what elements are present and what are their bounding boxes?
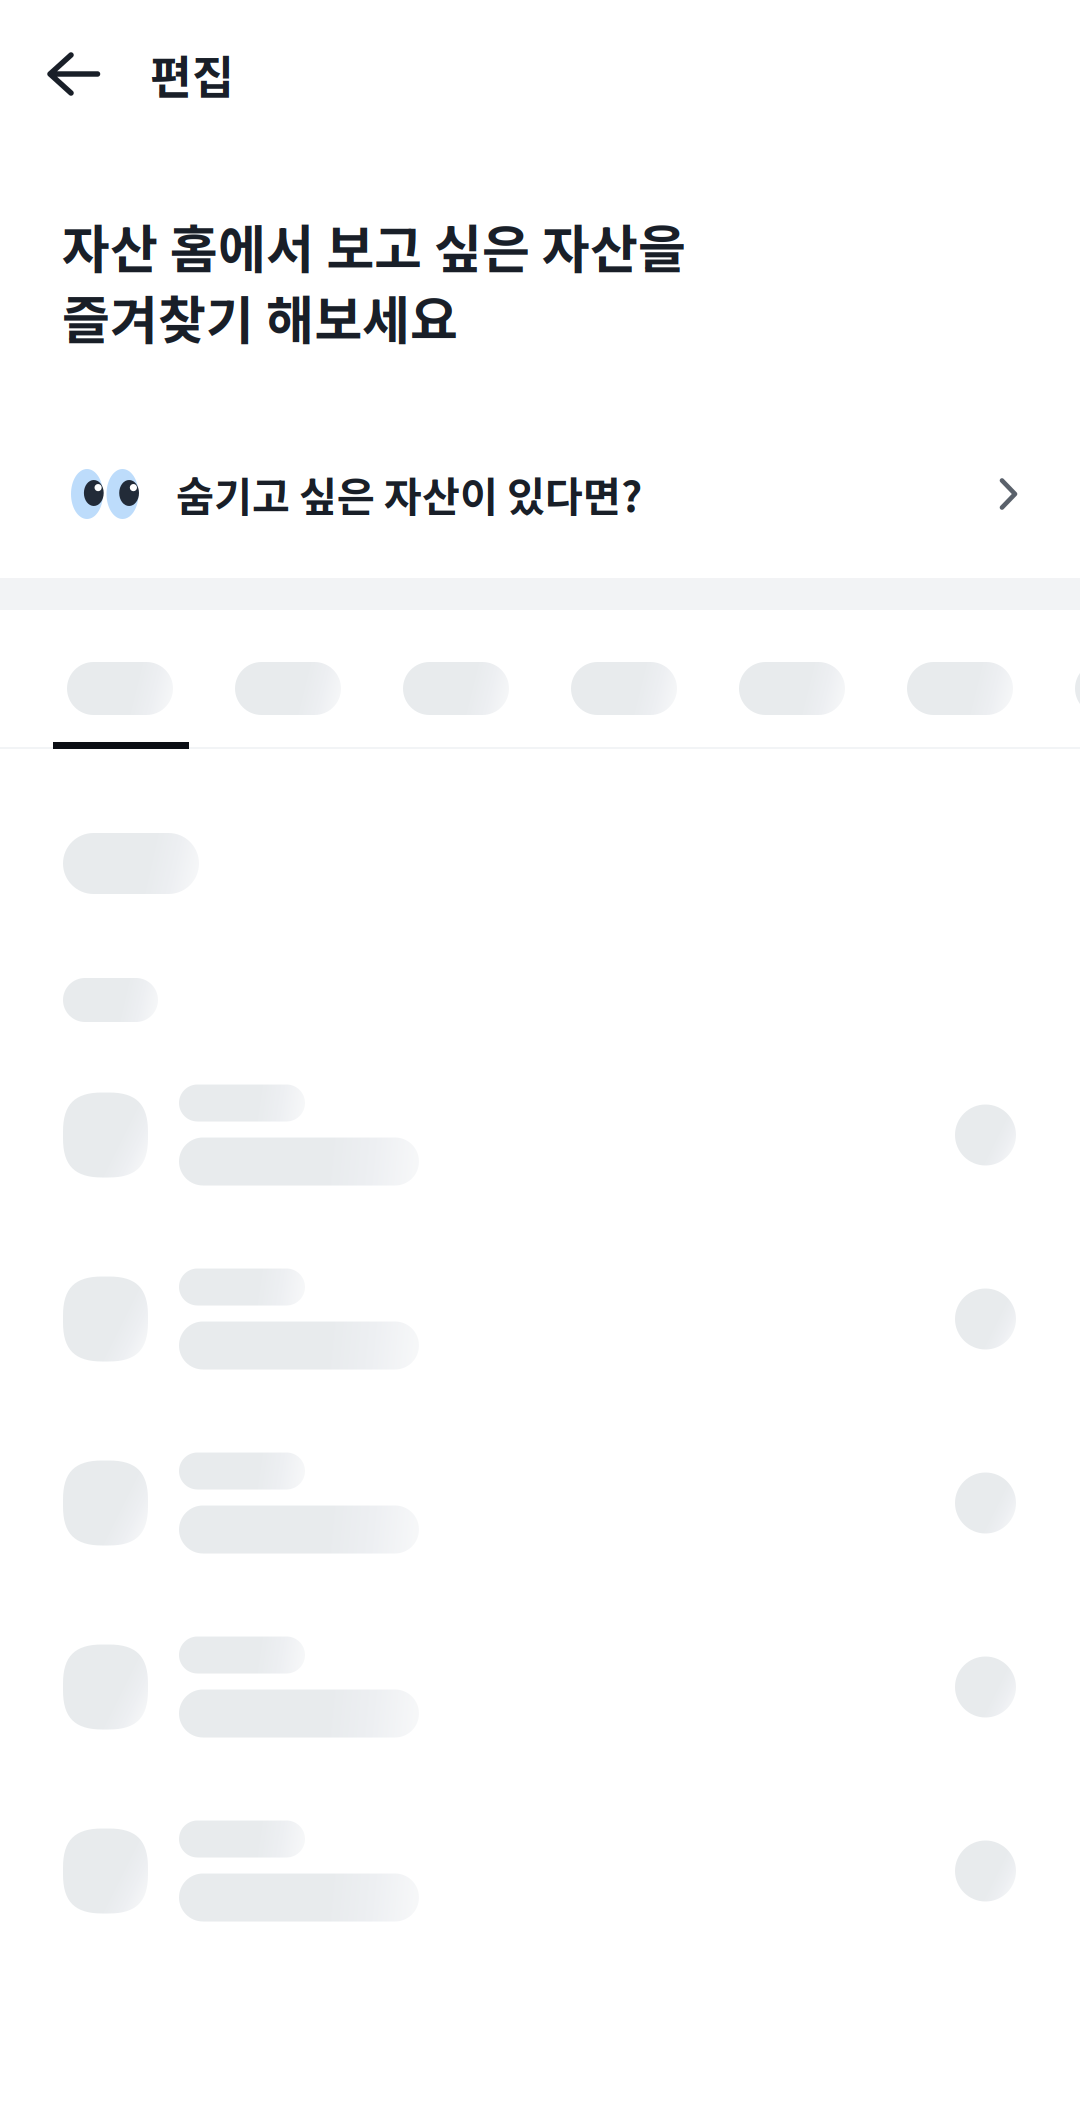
button[interactable]: 카테고리 1 <box>67 662 173 715</box>
staticText: 즐겨찾기 해보세요 <box>62 279 458 354</box>
button[interactable]: 편집 <box>150 0 234 148</box>
button[interactable]: 자산 불러오는 중 <box>63 1268 1016 1370</box>
button[interactable]: 자산 불러오는 중 <box>63 1820 1016 1922</box>
button[interactable]: 카테고리 6 <box>907 662 1013 715</box>
staticText: 편집 <box>150 41 234 107</box>
button[interactable]: 자산 불러오는 중 <box>63 1452 1016 1554</box>
button[interactable]: 카테고리 5 <box>739 662 845 715</box>
button[interactable]: 자산 불러오는 중 <box>63 1636 1016 1738</box>
button[interactable]: 자산 불러오는 중 <box>63 1084 1016 1186</box>
button[interactable]: 카테고리 7 <box>1075 662 1080 715</box>
staticText: 자산 홈에서 보고 싶은 자산을 <box>62 208 686 283</box>
button[interactable]: 뒤로 <box>0 0 150 148</box>
button[interactable]: 숨기고 싶은 자산이 있다면? <box>0 444 1080 544</box>
button[interactable]: 카테고리 3 <box>403 662 509 715</box>
staticText: 숨기고 싶은 자산이 있다면? <box>176 464 642 524</box>
button[interactable]: 카테고리 4 <box>571 662 677 715</box>
button[interactable]: 카테고리 2 <box>235 662 341 715</box>
